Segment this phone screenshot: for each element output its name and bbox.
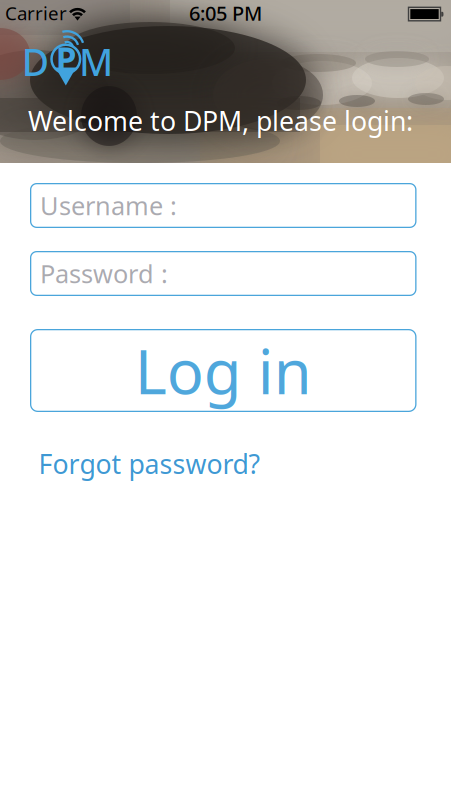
button[interactable]: Forgot password? <box>38 446 260 481</box>
staticText: Welcome to DPM, please login: <box>28 103 413 138</box>
button[interactable]: Password : <box>30 251 416 296</box>
staticText: P <box>56 36 77 81</box>
button[interactable]: Username : <box>30 183 416 228</box>
button[interactable]: Log in <box>30 329 416 412</box>
staticText: Log in <box>135 330 312 411</box>
staticText: Carrier <box>5 1 67 25</box>
staticText: Password : <box>40 257 168 290</box>
staticText: M <box>79 37 113 86</box>
staticText: 6:05 PM <box>189 0 262 26</box>
staticText: Forgot password? <box>38 446 260 481</box>
staticText: Username : <box>40 189 177 222</box>
staticText: D <box>22 37 49 86</box>
